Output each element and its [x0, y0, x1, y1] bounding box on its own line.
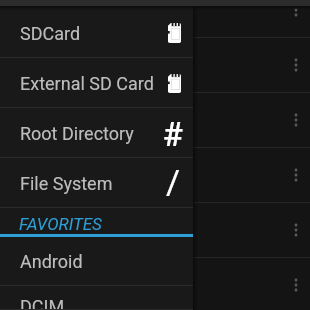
button[interactable]: More options: [283, 163, 309, 187]
staticText: #: [163, 115, 183, 154]
staticText: /: [166, 162, 181, 202]
button[interactable]: More options: [283, 53, 309, 77]
button[interactable]: More options: [283, 108, 309, 132]
button[interactable]: More options: [283, 0, 309, 22]
button[interactable]: More options: [283, 273, 309, 297]
button[interactable]: DCIM: [0, 286, 193, 310]
button[interactable]: SDCard: [0, 8, 193, 58]
staticText: Root Directory: [20, 123, 134, 144]
staticText: External SD Card: [20, 73, 154, 94]
button[interactable]: Root Directory: [0, 108, 193, 158]
button[interactable]: Android: [0, 237, 193, 286]
staticText: DCIM: [20, 296, 65, 310]
staticText: File System: [20, 173, 113, 194]
staticText: Android: [20, 251, 83, 272]
button[interactable]: File System: [0, 158, 193, 208]
staticText: SDCard: [20, 23, 81, 44]
button[interactable]: More options: [283, 218, 309, 242]
staticText: FAVORITES: [19, 214, 102, 234]
button[interactable]: External SD Card: [0, 58, 193, 108]
button[interactable]: FAVORITES: [0, 208, 193, 237]
